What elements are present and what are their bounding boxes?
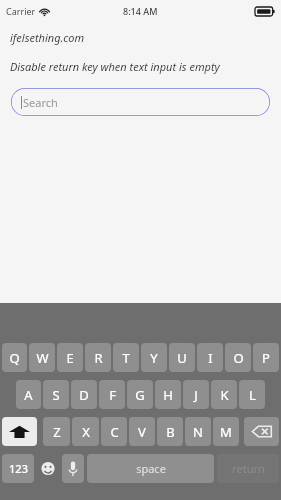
button[interactable]: Q bbox=[2, 343, 27, 372]
staticText: V bbox=[138, 423, 146, 441]
button[interactable]: K bbox=[211, 380, 237, 409]
staticText: 123 bbox=[9, 461, 28, 476]
button[interactable]: Z bbox=[43, 417, 70, 446]
button[interactable]: Search bbox=[11, 88, 270, 116]
button[interactable]: return bbox=[217, 454, 279, 483]
staticText: O bbox=[233, 349, 244, 367]
staticText: C bbox=[110, 423, 119, 441]
button[interactable]: A bbox=[16, 380, 41, 409]
button[interactable]: N bbox=[185, 417, 211, 446]
staticText: I bbox=[208, 349, 213, 367]
staticText: space bbox=[136, 461, 166, 476]
button[interactable]: Y bbox=[141, 343, 167, 372]
button[interactable]: space bbox=[87, 454, 214, 483]
staticText: 8:14 AM bbox=[123, 5, 158, 17]
staticText: S bbox=[52, 386, 60, 404]
button[interactable]: T bbox=[113, 343, 139, 372]
staticText: Disable return key when text input is em… bbox=[10, 59, 220, 74]
button[interactable]: Dictate bbox=[62, 454, 84, 483]
staticText: Search bbox=[23, 95, 58, 110]
button[interactable]: G bbox=[127, 380, 153, 409]
staticText: Z bbox=[53, 423, 61, 441]
staticText: J bbox=[194, 386, 198, 404]
staticText: H bbox=[163, 386, 173, 404]
staticText: G bbox=[135, 386, 145, 404]
button[interactable]: C bbox=[101, 417, 127, 446]
staticText: P bbox=[262, 349, 270, 367]
staticText: F bbox=[109, 386, 116, 404]
button[interactable]: Emoji bbox=[37, 454, 59, 483]
button[interactable]: X bbox=[72, 417, 99, 446]
button[interactable]: 123 bbox=[2, 454, 34, 483]
staticText: U bbox=[177, 349, 187, 367]
button[interactable]: S bbox=[43, 380, 69, 409]
staticText: Y bbox=[150, 349, 158, 367]
button[interactable]: V bbox=[129, 417, 155, 446]
button[interactable]: M bbox=[213, 417, 239, 446]
staticText: T bbox=[122, 349, 130, 367]
button[interactable]: I bbox=[197, 343, 223, 372]
button[interactable]: Shift bbox=[2, 417, 37, 446]
button[interactable]: O bbox=[225, 343, 251, 372]
staticText: K bbox=[220, 386, 229, 404]
button[interactable]: U bbox=[169, 343, 195, 372]
staticText: A bbox=[24, 386, 33, 404]
button[interactable]: J bbox=[183, 380, 209, 409]
staticText: B bbox=[166, 423, 175, 441]
button[interactable]: W bbox=[29, 343, 55, 372]
button[interactable]: E bbox=[57, 343, 83, 372]
staticText: X bbox=[82, 423, 90, 441]
button[interactable]: F bbox=[99, 380, 125, 409]
staticText: N bbox=[193, 423, 203, 441]
button[interactable]: Backspace bbox=[244, 417, 279, 446]
staticText: E bbox=[66, 349, 74, 367]
staticText: return bbox=[232, 461, 265, 476]
button[interactable]: D bbox=[71, 380, 97, 409]
staticText: M bbox=[220, 423, 232, 441]
staticText: D bbox=[79, 386, 89, 404]
staticText: Q bbox=[9, 349, 20, 367]
staticText: Carrier bbox=[6, 5, 36, 17]
staticText: ifelsething.com bbox=[10, 30, 85, 45]
button[interactable]: L bbox=[239, 380, 265, 409]
button[interactable]: P bbox=[253, 343, 279, 372]
staticText: R bbox=[94, 349, 103, 367]
staticText: W bbox=[36, 349, 49, 367]
staticText: L bbox=[249, 386, 256, 404]
button[interactable]: B bbox=[157, 417, 183, 446]
button[interactable]: R bbox=[85, 343, 111, 372]
button[interactable]: H bbox=[155, 380, 181, 409]
